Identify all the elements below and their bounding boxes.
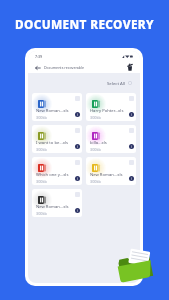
staticText: New Roman...xls: [36, 204, 69, 210]
staticText: Documents recoverable: [44, 65, 85, 70]
staticText: 300kb: [36, 211, 47, 216]
staticText: 300kb: [90, 115, 101, 120]
staticText: I want to be...xls: [36, 140, 69, 146]
button[interactable]: File info: [75, 144, 80, 149]
button[interactable]: Harry Pohter...xls: [86, 93, 136, 121]
staticText: 300kb: [36, 147, 47, 152]
staticText: New Roman...xls: [36, 108, 69, 114]
button[interactable]: Which one y...xls: [32, 157, 82, 185]
button[interactable]: billa...xls: [86, 125, 136, 153]
staticText: 300kb: [90, 179, 101, 184]
button[interactable]: I want to be...xls: [32, 125, 82, 153]
button[interactable]: Select All: [106, 79, 133, 87]
staticText: 300kb: [36, 179, 47, 184]
staticText: 300kb: [90, 147, 101, 152]
button[interactable]: File info: [129, 176, 134, 181]
staticText: Select All: [107, 80, 126, 86]
button[interactable]: Delete: [125, 62, 135, 72]
button[interactable]: New Roman...xls: [32, 189, 82, 217]
button[interactable]: New Roman...xls: [32, 93, 82, 121]
staticText: DOCUMENT RECOVERY: [0, 16, 169, 32]
button[interactable]: Back: [33, 63, 42, 72]
staticText: New Roman...xls: [90, 172, 123, 178]
staticText: Which one y...xls: [36, 172, 69, 178]
button[interactable]: File info: [129, 112, 134, 117]
staticText: 7:39: [35, 54, 43, 59]
button[interactable]: File info: [75, 208, 80, 213]
staticText: billa...xls: [90, 140, 107, 146]
button[interactable]: New Roman...xls: [86, 157, 136, 185]
button[interactable]: File info: [75, 176, 80, 181]
button[interactable]: File info: [129, 144, 134, 149]
staticText: Harry Pohter...xls: [90, 108, 124, 114]
staticText: 300kb: [36, 115, 47, 120]
button[interactable]: File info: [75, 112, 80, 117]
